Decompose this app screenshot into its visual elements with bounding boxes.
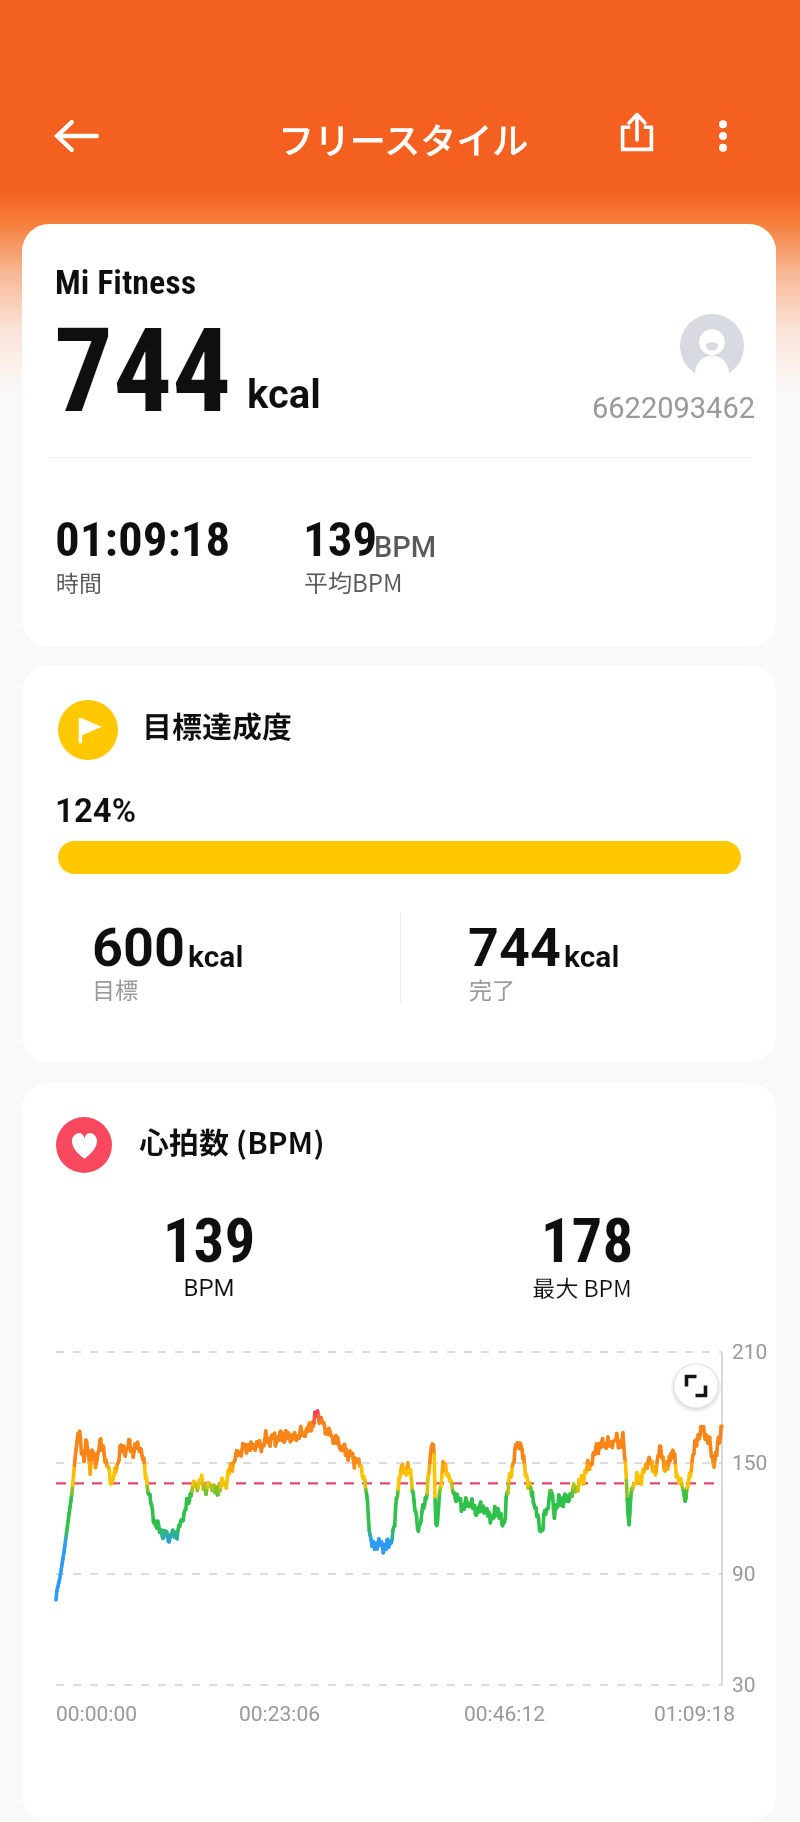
staticText: BPM	[81, 1274, 337, 1302]
staticText: 139	[303, 511, 378, 568]
staticText: 30	[732, 1673, 756, 1698]
staticText: 時間	[56, 565, 102, 598]
staticText: フリースタイル	[278, 112, 529, 164]
staticText: 目標	[92, 972, 138, 1005]
staticText: kcal	[564, 939, 620, 974]
button[interactable]: Expand chart	[669, 1359, 723, 1413]
staticText: 150	[732, 1451, 768, 1476]
staticText: 目標達成度	[142, 703, 292, 746]
staticText: 完了	[469, 972, 515, 1005]
staticText: 心拍数 (BPM)	[139, 1119, 325, 1162]
staticText: 最大 BPM	[454, 1270, 710, 1303]
staticText: 00:00:00	[56, 1702, 137, 1727]
staticText: Mi Fitness	[55, 262, 197, 302]
button[interactable]: Back	[40, 99, 114, 173]
staticText: 178	[459, 1205, 715, 1276]
staticText: kcal	[188, 939, 244, 974]
staticText: 90	[732, 1562, 756, 1587]
staticText: 平均BPM	[304, 564, 403, 599]
staticText: BPM	[374, 530, 437, 564]
staticText: kcal	[247, 371, 321, 418]
staticText: 139	[81, 1205, 337, 1276]
staticText: 124%	[55, 791, 137, 830]
staticText: 744	[54, 302, 232, 439]
staticText: 210	[732, 1340, 768, 1365]
staticText: 00:46:12	[464, 1702, 545, 1727]
staticText: 600	[92, 916, 185, 979]
button[interactable]: More options	[686, 99, 760, 173]
staticText: 6622093462	[592, 391, 755, 425]
staticText: 01:09:18	[654, 1702, 735, 1727]
staticText: 00:23:06	[239, 1702, 320, 1727]
staticText: 01:09:18	[55, 511, 231, 568]
staticText: 744	[468, 916, 561, 979]
button[interactable]: Share	[600, 95, 674, 169]
